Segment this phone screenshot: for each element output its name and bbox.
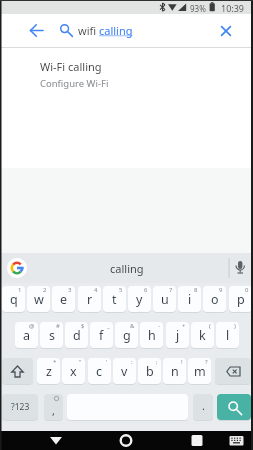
button[interactable]: ?123 [2,394,38,420]
staticText: a [23,327,31,344]
staticText: 5 [119,286,123,294]
staticText: d [73,327,81,344]
staticText: o [211,291,219,308]
staticText: l [226,327,230,344]
staticText: _ [107,322,110,330]
staticText: v [121,363,128,380]
staticText: 9 [219,286,223,294]
button[interactable]: p [229,286,252,312]
staticText: 8 [194,286,198,294]
staticText: . [202,398,205,413]
staticText: $ [81,322,85,330]
button[interactable]: Wi-Fi calling [0,48,253,90]
staticText: calling [110,261,144,276]
staticText: ) [234,322,236,330]
staticText: & [130,322,135,330]
button[interactable]: . [193,394,213,420]
button[interactable] [213,18,238,43]
button[interactable]: g [115,322,138,348]
button[interactable]: q [2,286,25,312]
staticText: - [158,322,160,330]
button[interactable]: s [40,322,63,348]
button[interactable] [7,258,27,278]
staticText: w [34,291,44,308]
staticText: 4 [94,286,98,294]
staticText: 1 [18,286,22,294]
button[interactable]: l [216,322,239,348]
staticText: Wi-Fi calling [40,59,102,74]
staticText: m [194,363,206,380]
staticText: 10:39 [221,2,245,14]
button[interactable]: y [128,286,151,312]
button[interactable]: h [140,322,163,348]
staticText: b [146,363,154,380]
button[interactable]: j [166,322,189,348]
button[interactable] [217,394,251,420]
staticText: z [46,363,52,380]
button[interactable] [24,18,49,43]
button[interactable] [185,431,209,450]
staticText: 7 [169,286,173,294]
staticText: # [56,322,60,330]
staticText: r [87,291,93,308]
staticText: k [199,327,206,344]
button[interactable]: i [178,286,201,312]
staticText: 0 [245,286,249,294]
staticText: 93% [190,3,206,14]
button[interactable]: n [163,358,186,384]
button[interactable] [2,358,33,384]
button[interactable]: c [88,358,111,384]
staticText: e [60,291,68,308]
button[interactable]: w [27,286,50,312]
button[interactable]: , [44,394,63,420]
staticText: h [148,327,156,344]
button[interactable]: u [153,286,176,312]
staticText: ? [205,358,208,366]
button[interactable] [226,431,248,450]
staticText: ?123 [11,401,30,413]
staticText: ' [106,358,108,366]
staticText: @ [29,322,35,330]
staticText: wifi calling [78,23,133,38]
staticText: n [171,363,179,380]
button[interactable]: m [188,358,211,384]
button[interactable]: k [191,322,214,348]
staticText: , [52,403,55,418]
button[interactable]: d [65,322,88,348]
staticText: 2 [43,286,47,294]
staticText: ; [156,358,158,366]
staticText: x [70,363,77,380]
button[interactable]: z [37,358,60,384]
button[interactable]: b [138,358,161,384]
staticText: j [176,327,180,344]
staticText: y [136,291,143,308]
button[interactable]: a [15,322,38,348]
staticText: s [49,327,55,344]
staticText: q [10,291,18,308]
staticText: + [182,322,186,330]
staticText: p [237,291,245,308]
button[interactable] [215,358,251,384]
staticText: g [123,327,131,344]
staticText: * [53,358,57,366]
button[interactable]: e [52,286,75,312]
staticText: Configure Wi-Fi [40,77,109,90]
button[interactable]: x [62,358,85,384]
staticText: " [79,358,82,366]
button[interactable]: t [103,286,126,312]
staticText: ( [209,322,211,330]
staticText: 6 [144,286,148,294]
staticText: ! [181,358,183,366]
button[interactable]: v [113,358,136,384]
staticText: 3 [68,286,72,294]
button[interactable]: calling [0,253,253,283]
staticText: i [188,291,192,308]
staticText: : [131,358,133,366]
button[interactable]: f [90,322,113,348]
staticText: f [99,327,104,344]
button[interactable] [44,431,68,450]
button[interactable] [114,431,138,450]
button[interactable]: o [203,286,226,312]
button[interactable]: r [78,286,101,312]
